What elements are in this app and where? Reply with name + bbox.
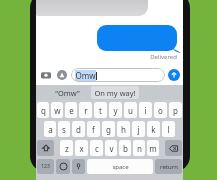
button[interactable]: w (51, 102, 63, 118)
staticText: g (106, 124, 111, 135)
button[interactable]: u (124, 102, 137, 118)
staticText: n (137, 143, 142, 154)
button[interactable]: t (94, 102, 107, 118)
staticText: j (137, 124, 140, 135)
button[interactable]: l (162, 121, 175, 137)
button[interactable]: z (60, 140, 73, 156)
button[interactable]: d (72, 121, 85, 137)
staticText: v (109, 143, 114, 154)
button[interactable]: Shift (37, 140, 54, 156)
button[interactable]: Camera (39, 68, 52, 81)
button[interactable]: s (58, 121, 70, 137)
button[interactable]: c (90, 140, 103, 156)
button[interactable]: o (154, 102, 167, 118)
button[interactable]: n (133, 140, 145, 156)
staticText: Omw (75, 70, 96, 81)
staticText: o (158, 105, 163, 116)
staticText: m (149, 143, 157, 154)
staticText: t (99, 105, 102, 116)
staticText: “Omw” (55, 88, 80, 98)
staticText: x (79, 143, 84, 154)
staticText: return (160, 163, 178, 171)
button[interactable]: r (79, 102, 92, 118)
button[interactable]: Emoji (56, 159, 70, 174)
staticText: u (128, 105, 133, 116)
button[interactable]: Dictation (72, 159, 85, 174)
button[interactable]: j (132, 121, 145, 137)
button[interactable]: e (65, 102, 77, 118)
button[interactable]: i (139, 102, 152, 118)
staticText: 123 (41, 163, 50, 170)
button[interactable]: v (105, 140, 117, 156)
staticText: c (95, 143, 99, 154)
button[interactable]: space (87, 159, 153, 174)
button[interactable]: q (37, 102, 49, 118)
button[interactable]: Apps (55, 68, 68, 81)
staticText: s (62, 124, 66, 135)
button[interactable] (36, 0, 148, 16)
button[interactable]: y (109, 102, 122, 118)
button[interactable]: Omw (71, 68, 165, 82)
staticText: f (92, 124, 95, 135)
button[interactable]: “Omw” (55, 88, 80, 98)
button[interactable]: Backspace (165, 140, 182, 156)
staticText: i (144, 105, 147, 116)
staticText: r (84, 105, 88, 116)
button[interactable]: 123 (37, 159, 54, 174)
staticText: p (173, 105, 178, 116)
staticText: k (151, 124, 156, 135)
staticText: space (112, 163, 129, 171)
staticText: w (54, 105, 61, 116)
staticText: d (76, 124, 81, 135)
button[interactable]: b (119, 140, 131, 156)
button[interactable]: k (147, 121, 160, 137)
staticText: h (121, 124, 126, 135)
staticText: On my way! (94, 88, 136, 98)
button[interactable]: g (102, 121, 115, 137)
button[interactable]: Send (168, 69, 180, 81)
staticText: b (123, 143, 128, 154)
staticText: q (41, 105, 46, 116)
button[interactable]: m (147, 140, 159, 156)
button[interactable]: On my way! (91, 86, 139, 99)
staticText: e (69, 105, 74, 116)
button[interactable]: h (117, 121, 130, 137)
button[interactable]: x (75, 140, 88, 156)
button[interactable] (97, 25, 177, 51)
staticText: a (48, 124, 53, 135)
staticText: l (167, 124, 170, 135)
staticText: z (65, 143, 69, 154)
button[interactable]: f (87, 121, 100, 137)
staticText: y (113, 105, 118, 116)
staticText: Delivered (150, 53, 177, 61)
button[interactable]: p (169, 102, 182, 118)
button[interactable]: return (155, 159, 182, 174)
button[interactable]: a (44, 121, 56, 137)
